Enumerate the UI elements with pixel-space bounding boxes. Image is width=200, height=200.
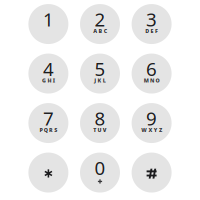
staticText: 0 xyxy=(94,155,105,180)
staticText: 5 xyxy=(94,56,105,81)
staticText: C xyxy=(104,27,107,34)
button[interactable]: 5 xyxy=(80,53,120,93)
button[interactable]: Pound xyxy=(132,153,172,193)
staticText: 6 xyxy=(146,56,157,81)
staticText: T xyxy=(93,126,96,133)
staticText: D xyxy=(145,27,149,34)
staticText: 2 xyxy=(94,6,105,32)
staticText: P xyxy=(39,126,42,133)
staticText: K xyxy=(97,77,101,84)
staticText: 3 xyxy=(146,6,157,32)
staticText: I xyxy=(53,77,55,84)
button[interactable]: 9 xyxy=(132,103,172,143)
button[interactable]: 4 xyxy=(28,53,68,93)
staticText: E xyxy=(151,27,154,34)
button[interactable]: Star xyxy=(28,153,68,193)
staticText: Z xyxy=(159,126,162,133)
staticText: O xyxy=(155,77,159,84)
staticText: G xyxy=(42,77,46,84)
staticText: 4 xyxy=(43,56,54,81)
staticText: 8 xyxy=(94,105,105,131)
button[interactable]: 7 xyxy=(28,103,68,143)
staticText: N xyxy=(150,77,154,84)
staticText: J xyxy=(94,77,96,84)
staticText: 7 xyxy=(43,105,54,131)
staticText: X xyxy=(148,126,152,133)
staticText: B xyxy=(98,27,102,34)
button[interactable]: 3 xyxy=(132,4,172,44)
button[interactable]: 1 xyxy=(28,4,68,44)
staticText: W xyxy=(141,126,147,133)
staticText: 1 xyxy=(43,6,54,32)
staticText: U xyxy=(97,126,101,133)
staticText: M xyxy=(144,77,149,84)
button[interactable]: 6 xyxy=(132,53,172,93)
staticText: Q xyxy=(44,126,48,133)
button[interactable]: 0 xyxy=(80,153,120,193)
staticText: R xyxy=(49,126,53,133)
button[interactable]: 8 xyxy=(80,103,120,143)
staticText: F xyxy=(155,27,158,34)
staticText: A xyxy=(93,27,97,34)
staticText: 9 xyxy=(146,105,157,131)
staticText: Y xyxy=(154,126,158,133)
staticText: L xyxy=(103,77,106,84)
staticText: S xyxy=(54,126,57,133)
staticText: H xyxy=(47,77,51,84)
staticText: V xyxy=(103,126,107,133)
button[interactable]: 2 xyxy=(80,4,120,44)
